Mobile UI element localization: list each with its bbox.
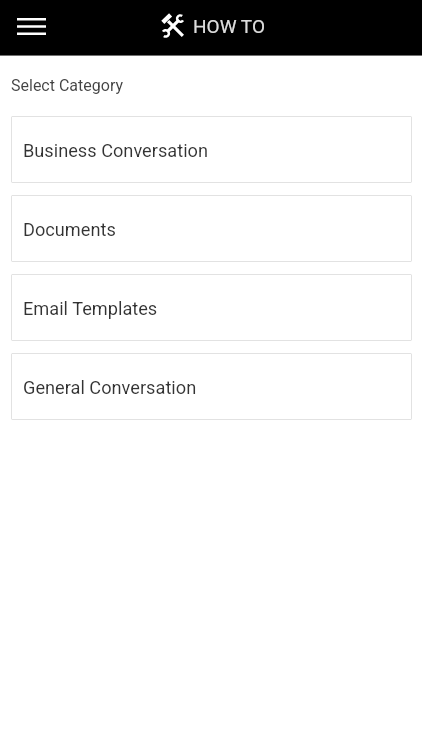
staticText: Business Conversation [23,140,208,161]
staticText: HOW TO [193,15,265,37]
staticText: Documents [23,219,116,240]
button[interactable]: General Conversation [11,353,412,420]
button[interactable]: Business Conversation [11,116,412,183]
staticText: General Conversation [23,377,197,398]
staticText: Email Templates [23,298,158,319]
button[interactable]: Open navigation menu [12,7,50,45]
button[interactable]: Documents [11,195,412,262]
button[interactable]: Email Templates [11,274,412,341]
staticText: Select Category [11,76,124,95]
